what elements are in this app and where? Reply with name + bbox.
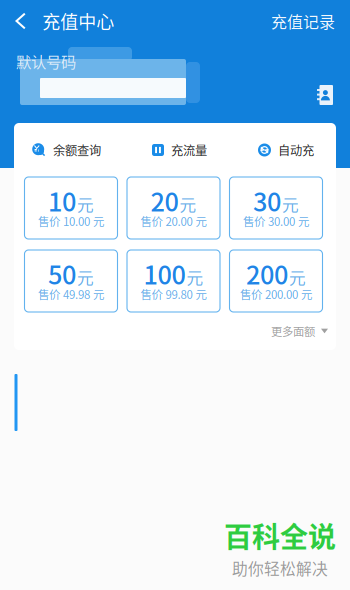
staticText: 售价 20.00 元 [140,213,206,229]
staticText: 售价 30.00 元 [243,213,309,229]
button[interactable]: 10 [24,177,117,239]
staticText: 助你轻松解决 [232,556,328,579]
staticText: 售价 200.00 元 [240,286,312,302]
button[interactable]: 充值中心 [0,0,114,42]
button[interactable]: 30 [229,177,322,239]
staticText: 默认号码 [16,50,76,72]
button[interactable]: 充流量 [152,141,207,159]
staticText: 50 [48,255,76,292]
button[interactable]: 余额查询 [32,141,101,159]
staticText: 200 [246,255,288,292]
staticText: 余额查询 [53,141,101,159]
staticText: 售价 49.98 元 [38,286,104,302]
staticText: 充流量 [171,141,207,159]
button[interactable]: 100 [127,250,220,312]
staticText: 元 [77,265,94,289]
staticText: 售价 99.80 元 [140,286,206,302]
staticText: 元 [186,265,203,289]
staticText: 充值中心 [42,8,114,34]
staticText: 元 [282,192,299,216]
staticText: 10 [48,182,76,219]
staticText: 充值记录 [271,9,335,33]
staticText: 元 [289,265,306,289]
staticText: 百科全说 [224,515,336,555]
button[interactable]: 充值记录 [271,1,350,41]
staticText: 更多面额 [271,323,315,339]
button[interactable]: Choose contact [313,81,337,109]
staticText: 30 [253,182,281,219]
staticText: 元 [179,192,196,216]
button[interactable]: 更多面额 [271,317,328,345]
button[interactable]: 20 [127,177,220,239]
staticText: 20 [150,182,178,219]
button[interactable]: 200 [229,250,322,312]
button[interactable]: 50 [24,250,117,312]
staticText: 售价 10.00 元 [38,213,104,229]
staticText: 100 [143,255,185,292]
button[interactable]: 自动充 [258,141,314,159]
staticText: 元 [77,192,94,216]
staticText: 自动充 [278,141,314,159]
